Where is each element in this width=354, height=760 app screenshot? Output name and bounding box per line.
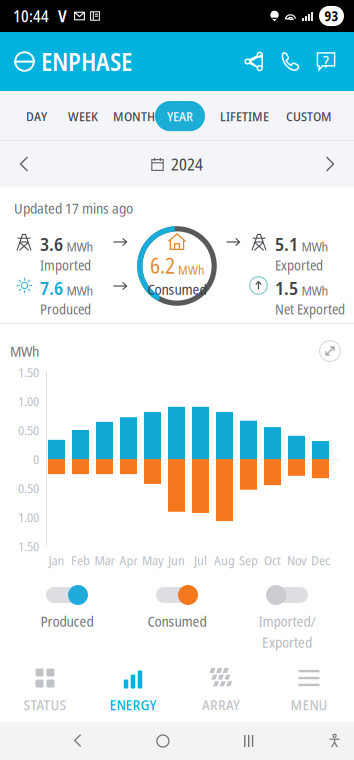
button[interactable]: Help <box>308 39 344 83</box>
staticText: Apr <box>119 551 137 569</box>
staticText: Dec <box>311 551 330 569</box>
staticText: MWh <box>301 281 328 299</box>
staticText: 5.1 <box>275 231 298 256</box>
staticText: ARRAY <box>202 694 240 714</box>
button[interactable]: DAY <box>14 101 59 131</box>
staticText: Consumed <box>147 611 206 631</box>
staticText: Mar <box>94 551 114 569</box>
staticText: 1.00 <box>18 508 39 526</box>
staticText: MWh <box>178 261 204 279</box>
staticText: 1.00 <box>18 392 39 410</box>
staticText: YEAR <box>167 107 193 125</box>
staticText: MONTH <box>113 107 155 125</box>
staticText: Jan <box>48 551 64 569</box>
button[interactable]: Next year <box>306 141 354 187</box>
button[interactable]: 2024 <box>151 141 203 187</box>
button[interactable]: Expand chart <box>314 336 346 366</box>
staticText: ENPHASE <box>41 45 132 78</box>
staticText: Imported/ <box>258 611 315 631</box>
staticText: 0 <box>33 450 39 468</box>
staticText: Exported <box>262 632 312 652</box>
button[interactable]: Consumed <box>122 585 232 641</box>
staticText: Exported <box>275 255 323 274</box>
staticText: V <box>58 5 67 27</box>
staticText: WEEK <box>68 107 98 125</box>
staticText: Jun <box>168 551 185 569</box>
staticText: Jul <box>194 551 207 569</box>
staticText: Oct <box>264 551 281 569</box>
staticText: 1.5 <box>275 275 298 300</box>
staticText: Consumed <box>147 279 206 299</box>
button[interactable]: Share <box>236 39 272 83</box>
staticText: May <box>142 551 163 569</box>
staticText: MWh <box>301 237 328 255</box>
button[interactable]: Imported/ <box>232 585 342 641</box>
button[interactable]: Previous year <box>0 141 48 187</box>
staticText: 2024 <box>171 153 203 175</box>
button[interactable]: WEEK <box>56 101 110 131</box>
button[interactable]: Call support <box>272 39 308 83</box>
staticText: 0.50 <box>18 479 39 497</box>
staticText: STATUS <box>23 694 66 714</box>
staticText: DAY <box>26 107 47 125</box>
staticText: MENU <box>290 694 327 714</box>
staticText: 0.50 <box>18 421 39 439</box>
staticText: 6.2 <box>150 251 175 280</box>
staticText: MWh <box>66 237 93 255</box>
staticText: MWh <box>66 281 93 299</box>
staticText: MWh <box>10 341 39 361</box>
staticText: ? <box>323 51 329 72</box>
staticText: 1.50 <box>18 537 39 555</box>
staticText: Imported <box>40 255 91 274</box>
button[interactable]: STATUS <box>1 660 89 722</box>
staticText: Aug <box>214 551 235 569</box>
staticText: 1.50 <box>18 363 39 381</box>
button[interactable]: YEAR <box>155 101 205 131</box>
staticText: 7.6 <box>40 275 63 300</box>
button[interactable]: ARRAY <box>177 660 265 722</box>
staticText: ENERGY <box>109 694 156 714</box>
staticText: Updated 17 mins ago <box>14 198 133 218</box>
staticText: Nov <box>287 551 306 569</box>
staticText: Sep <box>239 551 258 569</box>
staticText: 93 <box>324 7 338 25</box>
button[interactable]: CUSTOM <box>274 101 344 131</box>
button[interactable]: Produced <box>12 585 122 641</box>
staticText: Produced <box>40 299 91 318</box>
staticText: Produced <box>40 611 93 631</box>
button[interactable]: MONTH <box>101 101 167 131</box>
staticText: 3.6 <box>40 231 63 256</box>
staticText: LIFETIME <box>220 107 269 125</box>
button[interactable]: MENU <box>265 660 353 722</box>
staticText: CUSTOM <box>286 107 332 125</box>
button[interactable]: LIFETIME <box>208 101 281 131</box>
staticText: 10:44 <box>13 5 49 27</box>
button[interactable]: ENERGY <box>89 660 177 722</box>
staticText: Net Exported <box>275 299 345 318</box>
staticText: Feb <box>71 551 90 569</box>
